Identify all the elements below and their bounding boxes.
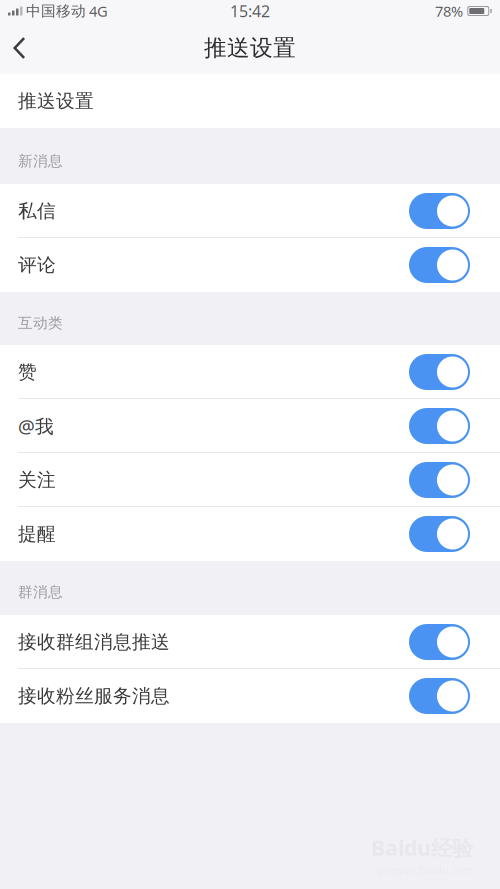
staticText: 群消息 bbox=[18, 583, 63, 601]
staticText: 中国移动 bbox=[26, 2, 86, 20]
button[interactable]: 评论 bbox=[0, 238, 500, 292]
button[interactable]: 私信 bbox=[0, 184, 500, 238]
staticText: 私信 bbox=[18, 199, 56, 222]
button[interactable]: 赞 bbox=[0, 345, 500, 399]
staticText: 4G bbox=[89, 1, 108, 21]
staticText: 接收群组消息推送 bbox=[18, 630, 170, 653]
staticText: 提醒 bbox=[18, 522, 56, 545]
staticText: 互动类 bbox=[18, 314, 63, 332]
staticText: @我 bbox=[18, 414, 54, 438]
staticText: 15:42 bbox=[230, 0, 270, 22]
button[interactable]: 接收群组消息推送 bbox=[0, 615, 500, 669]
staticText: 接收粉丝服务消息 bbox=[18, 684, 170, 707]
button[interactable]: @我 bbox=[0, 399, 500, 453]
staticText: 推送设置 bbox=[204, 34, 296, 62]
button[interactable]: 提醒 bbox=[0, 507, 500, 561]
staticText: 关注 bbox=[18, 468, 56, 491]
staticText: 新消息 bbox=[18, 152, 63, 170]
staticText: 推送设置 bbox=[18, 89, 94, 112]
button[interactable]: Back bbox=[0, 22, 44, 74]
staticText: Baidu经验 bbox=[371, 833, 473, 862]
staticText: 赞 bbox=[18, 360, 37, 383]
staticText: 评论 bbox=[18, 253, 56, 276]
button[interactable]: 接收粉丝服务消息 bbox=[0, 669, 500, 723]
staticText: 78% bbox=[435, 1, 463, 21]
button[interactable]: 推送设置 bbox=[0, 74, 500, 128]
button[interactable]: 关注 bbox=[0, 453, 500, 507]
